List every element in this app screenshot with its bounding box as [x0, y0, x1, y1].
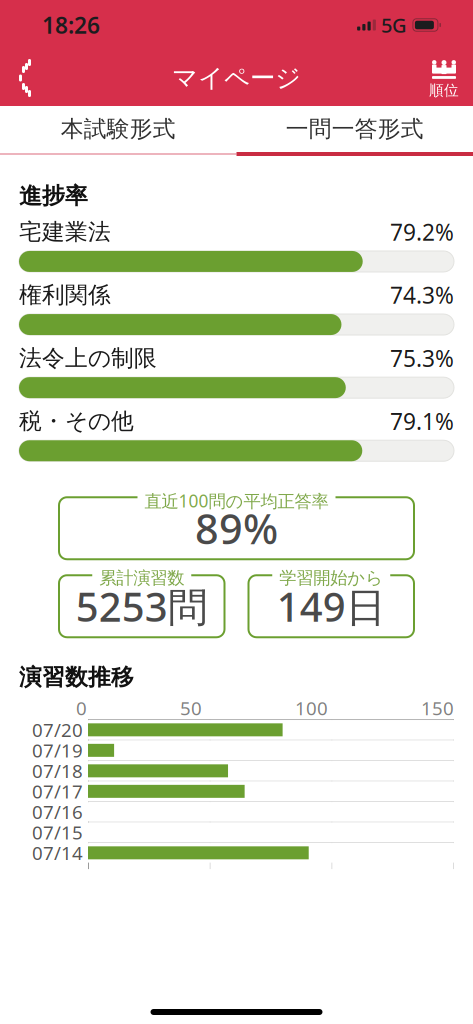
staticText: 直近100問の平均正答率	[144, 489, 328, 512]
staticText: 150	[421, 696, 454, 720]
button[interactable]: 戻る	[0, 50, 50, 106]
staticText: 一問一答形式	[286, 115, 424, 143]
staticText: 法令上の制限	[19, 344, 157, 372]
staticText: 07/18	[32, 758, 83, 783]
staticText: 07/15	[32, 820, 83, 845]
staticText: 5253問	[76, 580, 208, 633]
button[interactable]: 一問一答形式	[236, 106, 473, 152]
staticText: 89%	[195, 501, 278, 556]
staticText: 5G	[381, 12, 407, 38]
staticText: 07/16	[32, 799, 83, 824]
staticText: 権利関係	[19, 281, 111, 309]
staticText: 07/19	[32, 738, 83, 763]
staticText: 演習数推移	[19, 663, 134, 691]
staticText: 100	[295, 696, 328, 720]
staticText: 18:26	[42, 10, 100, 40]
staticText: 07/14	[32, 840, 83, 865]
staticText: 74.3%	[390, 280, 454, 310]
staticText: 149日	[277, 580, 386, 633]
staticText: 79.2%	[390, 217, 454, 247]
staticText: 宅建業法	[19, 218, 111, 246]
staticText: 本試験形式	[61, 115, 176, 143]
staticText: 79.1%	[390, 406, 454, 436]
button[interactable]: 順位	[429, 50, 473, 106]
staticText: 累計演習数	[99, 567, 184, 588]
staticText: 0	[76, 696, 87, 720]
staticText: 75.3%	[390, 343, 454, 373]
staticText: 07/20	[32, 717, 83, 742]
staticText: 50	[180, 696, 202, 720]
staticText: 07/17	[32, 779, 83, 804]
staticText: 順位	[429, 81, 459, 99]
staticText: 税・その他	[19, 407, 134, 435]
staticText: 学習開始から	[279, 567, 383, 588]
staticText: 進捗率	[19, 182, 88, 210]
button[interactable]: 本試験形式	[0, 106, 236, 152]
staticText: マイページ	[172, 62, 301, 93]
